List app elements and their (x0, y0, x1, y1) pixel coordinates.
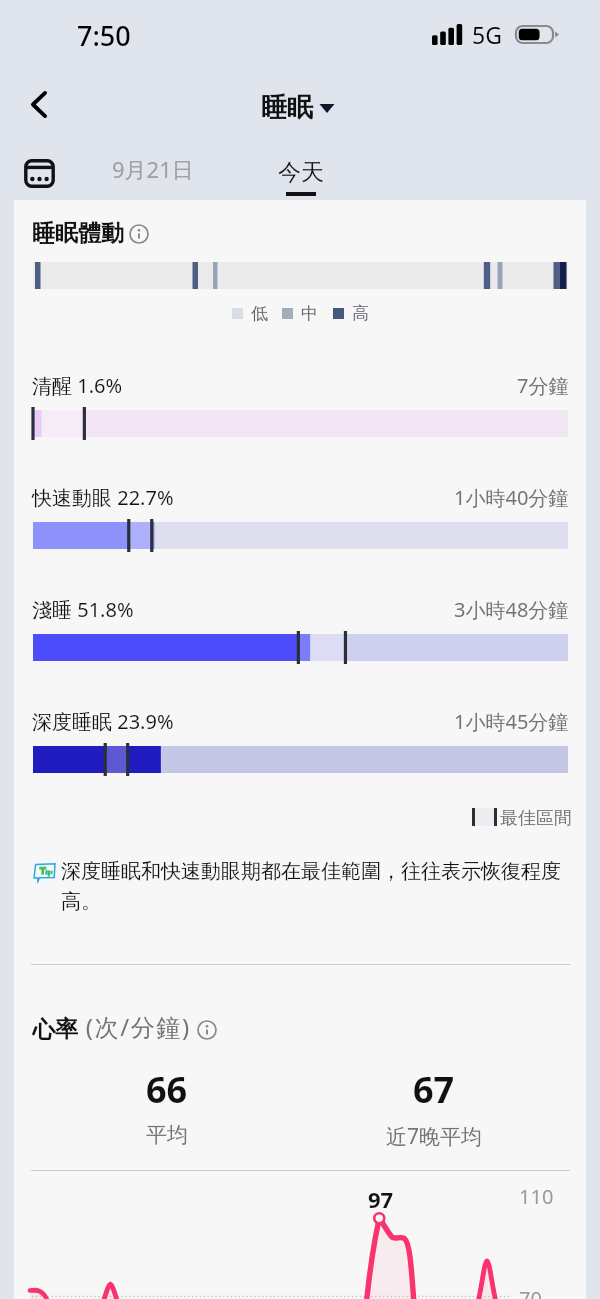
staticText: (次/分鐘) (78, 1010, 191, 1043)
staticText: 67 (413, 1065, 455, 1114)
button[interactable]: 睡眠 (261, 91, 335, 124)
staticText: 淺睡 51.8% (32, 596, 134, 623)
button[interactable]: Back (16, 81, 62, 127)
button[interactable]: 今天 (268, 148, 334, 206)
staticText: 66 (146, 1065, 188, 1114)
staticText: 1小時40分鐘 (454, 484, 569, 511)
staticText: 7:50 (77, 17, 131, 54)
staticText: 最佳區間 (500, 807, 572, 830)
staticText: 5G (472, 19, 502, 50)
staticText: 7分鐘 (517, 372, 569, 399)
staticText: 高 (352, 303, 369, 324)
staticText: 近7晚平均 (386, 1122, 483, 1151)
staticText: 110 (519, 1183, 554, 1210)
staticText: 1小時45分鐘 (454, 708, 569, 735)
staticText: 低 (251, 303, 268, 324)
staticText: 9月21日 (112, 154, 194, 184)
staticText: 平均 (146, 1122, 188, 1148)
staticText: 70 (519, 1285, 542, 1299)
staticText: 97 (368, 1184, 394, 1214)
staticText: 睡眠體動 (32, 219, 124, 248)
staticText: 今天 (278, 158, 324, 187)
staticText: 中 (301, 303, 318, 324)
button[interactable]: 9月21日 (102, 144, 204, 194)
staticText: 快速動眼 22.7% (32, 484, 174, 511)
staticText: 深度睡眠 23.9% (32, 708, 174, 735)
staticText: 3小時48分鐘 (454, 596, 569, 623)
staticText: 睡眠 (261, 91, 313, 124)
staticText: 清醒 1.6% (32, 372, 123, 399)
staticText: 心率 (32, 1015, 78, 1044)
staticText: 深度睡眠和快速動眼期都在最佳範圍，往往表示恢復程度高。 (61, 859, 571, 914)
button[interactable]: Calendar (16, 150, 62, 196)
